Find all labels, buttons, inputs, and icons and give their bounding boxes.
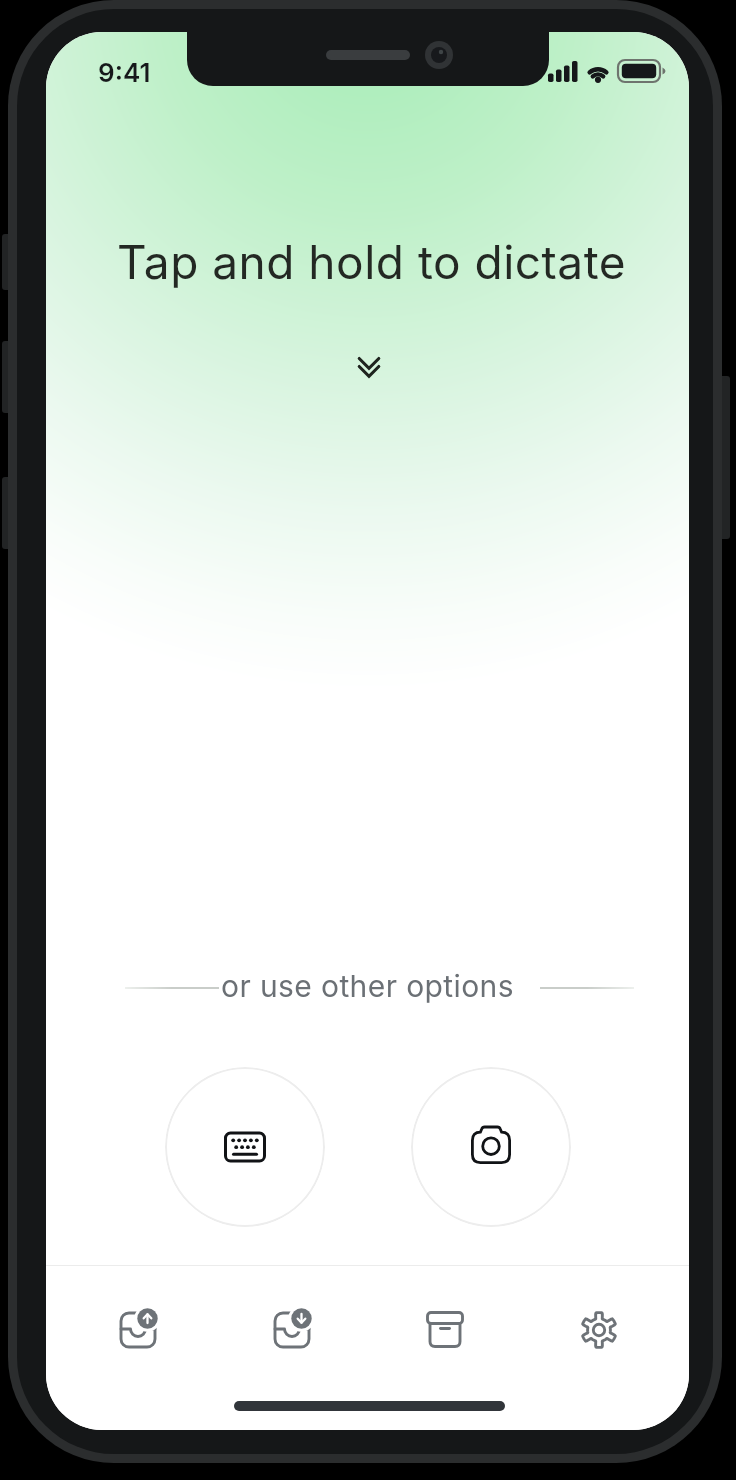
button[interactable] [93,1285,183,1375]
button[interactable] [411,1067,571,1227]
staticText: or use other options [221,968,514,1004]
button[interactable] [247,1285,337,1375]
button[interactable] [400,1285,490,1375]
button[interactable] [165,1067,325,1227]
staticText: 9:41 [98,57,151,88]
staticText: Tap and hold to dictate [117,234,627,290]
button[interactable] [554,1285,644,1375]
